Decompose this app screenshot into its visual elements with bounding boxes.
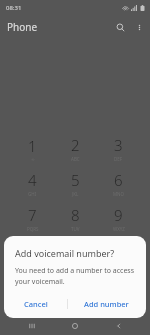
staticText: Add number xyxy=(84,299,129,309)
button[interactable]: 8 xyxy=(54,201,97,236)
staticText: JKL xyxy=(72,191,79,197)
staticText: 2 xyxy=(71,135,80,155)
staticText: MNO xyxy=(113,191,125,197)
staticText: TUV xyxy=(71,226,80,232)
staticText: WXYZ xyxy=(113,226,125,232)
staticText: ABC xyxy=(71,156,80,162)
staticText: 8 xyxy=(71,205,80,225)
button[interactable]: 2 xyxy=(54,131,97,166)
staticText: 5 xyxy=(71,170,80,190)
button[interactable]: Home xyxy=(63,316,87,335)
button[interactable]: 5 xyxy=(54,166,97,201)
button[interactable]: 6 xyxy=(97,166,140,201)
button[interactable]: Add number xyxy=(78,295,135,313)
staticText: 1 xyxy=(28,136,37,156)
button[interactable]: 1 xyxy=(11,131,54,166)
button[interactable]: Search xyxy=(110,17,130,37)
staticText: Cancel xyxy=(24,299,48,309)
staticText: You need to add a number to access your … xyxy=(15,266,137,286)
staticText: PQRS xyxy=(27,226,39,232)
button[interactable]: 4 xyxy=(11,166,54,201)
button[interactable]: More options xyxy=(130,18,148,36)
button[interactable]: Cancel xyxy=(15,295,57,313)
button[interactable]: 9 xyxy=(97,201,140,236)
staticText: 0 xyxy=(71,240,80,260)
staticText: Phone xyxy=(7,20,38,34)
button[interactable]: 0 xyxy=(54,236,97,271)
staticText: DEF xyxy=(114,156,123,162)
staticText: GHI xyxy=(28,191,37,197)
button[interactable]: 3 xyxy=(97,131,140,166)
staticText: Add voicemail number? xyxy=(15,247,115,259)
button[interactable]: Back xyxy=(107,316,131,335)
staticText: 9 xyxy=(114,205,123,225)
button[interactable]: 7 xyxy=(11,201,54,236)
staticText: 08:31 xyxy=(6,4,22,12)
staticText: 3 xyxy=(114,135,123,155)
staticText: 4 xyxy=(28,170,37,190)
staticText: 7 xyxy=(28,205,37,225)
staticText: 6 xyxy=(114,170,123,190)
button[interactable]: Recents xyxy=(20,316,44,335)
